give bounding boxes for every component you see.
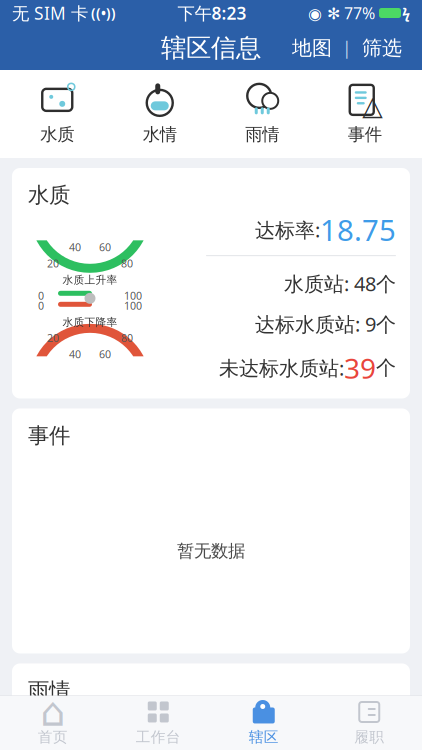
staticText: 工作台	[136, 728, 181, 746]
staticText: 60	[99, 347, 111, 361]
button[interactable]: 履职	[316, 694, 422, 750]
button[interactable]: 工作台	[105, 694, 211, 750]
staticText: 未达标水质站:	[219, 355, 344, 381]
staticText: 辖区	[249, 728, 279, 746]
staticText: 下午8:23	[177, 1, 246, 24]
staticText: 20	[47, 331, 59, 345]
button[interactable]: 筛选	[356, 30, 408, 66]
staticText: 39	[344, 349, 376, 386]
staticText: 达标水质站: 9个	[255, 311, 396, 337]
staticText: 暂无数据	[177, 540, 245, 562]
staticText: 筛选	[362, 36, 402, 60]
staticText: 地图	[292, 36, 332, 60]
staticText: △	[362, 91, 383, 121]
staticText: 18.75	[320, 210, 396, 249]
staticText: 首页	[38, 728, 68, 746]
button[interactable]: 地图	[286, 30, 338, 66]
staticText: 20	[47, 256, 59, 270]
staticText: 40	[69, 347, 81, 361]
button[interactable]: 辖区	[211, 694, 316, 750]
button[interactable]: 雨情	[211, 73, 313, 155]
staticText: 水质下降率	[62, 316, 117, 329]
staticText: ⌂	[40, 689, 65, 735]
staticText: 水质站: 48个	[284, 270, 396, 297]
staticText: 事件	[28, 422, 70, 449]
button[interactable]: ⌂	[0, 694, 105, 750]
staticText: 事件	[348, 124, 382, 145]
staticText: 80	[121, 256, 133, 270]
staticText: ((•))	[88, 4, 116, 22]
button[interactable]: 水情	[108, 73, 211, 155]
staticText: 80	[121, 331, 133, 345]
staticText: 0	[38, 298, 44, 313]
staticText: 达标率:	[255, 216, 320, 243]
staticText: 履职	[354, 728, 384, 746]
staticText: 水情	[143, 124, 177, 145]
staticText: 60	[99, 240, 111, 254]
staticText: 无 SIM 卡	[12, 1, 88, 24]
staticText: 水质上升率	[62, 273, 117, 286]
button[interactable]: 水质	[6, 73, 108, 155]
staticText: 40	[69, 240, 81, 254]
staticText: |	[342, 36, 352, 59]
staticText: 雨情	[245, 124, 279, 145]
staticText: 辖区信息	[161, 32, 261, 63]
staticText: 个	[376, 356, 396, 380]
staticText: 水质	[28, 182, 70, 208]
staticText: 100	[124, 298, 142, 313]
staticText: 0	[38, 288, 44, 303]
staticText: 100	[124, 288, 142, 303]
button[interactable]: △	[313, 73, 416, 155]
staticText: ◉ ✻ 77%	[308, 2, 375, 24]
staticText: 水质	[40, 124, 74, 145]
staticText: ϟ	[402, 3, 410, 23]
staticText: 雨情	[28, 677, 70, 704]
